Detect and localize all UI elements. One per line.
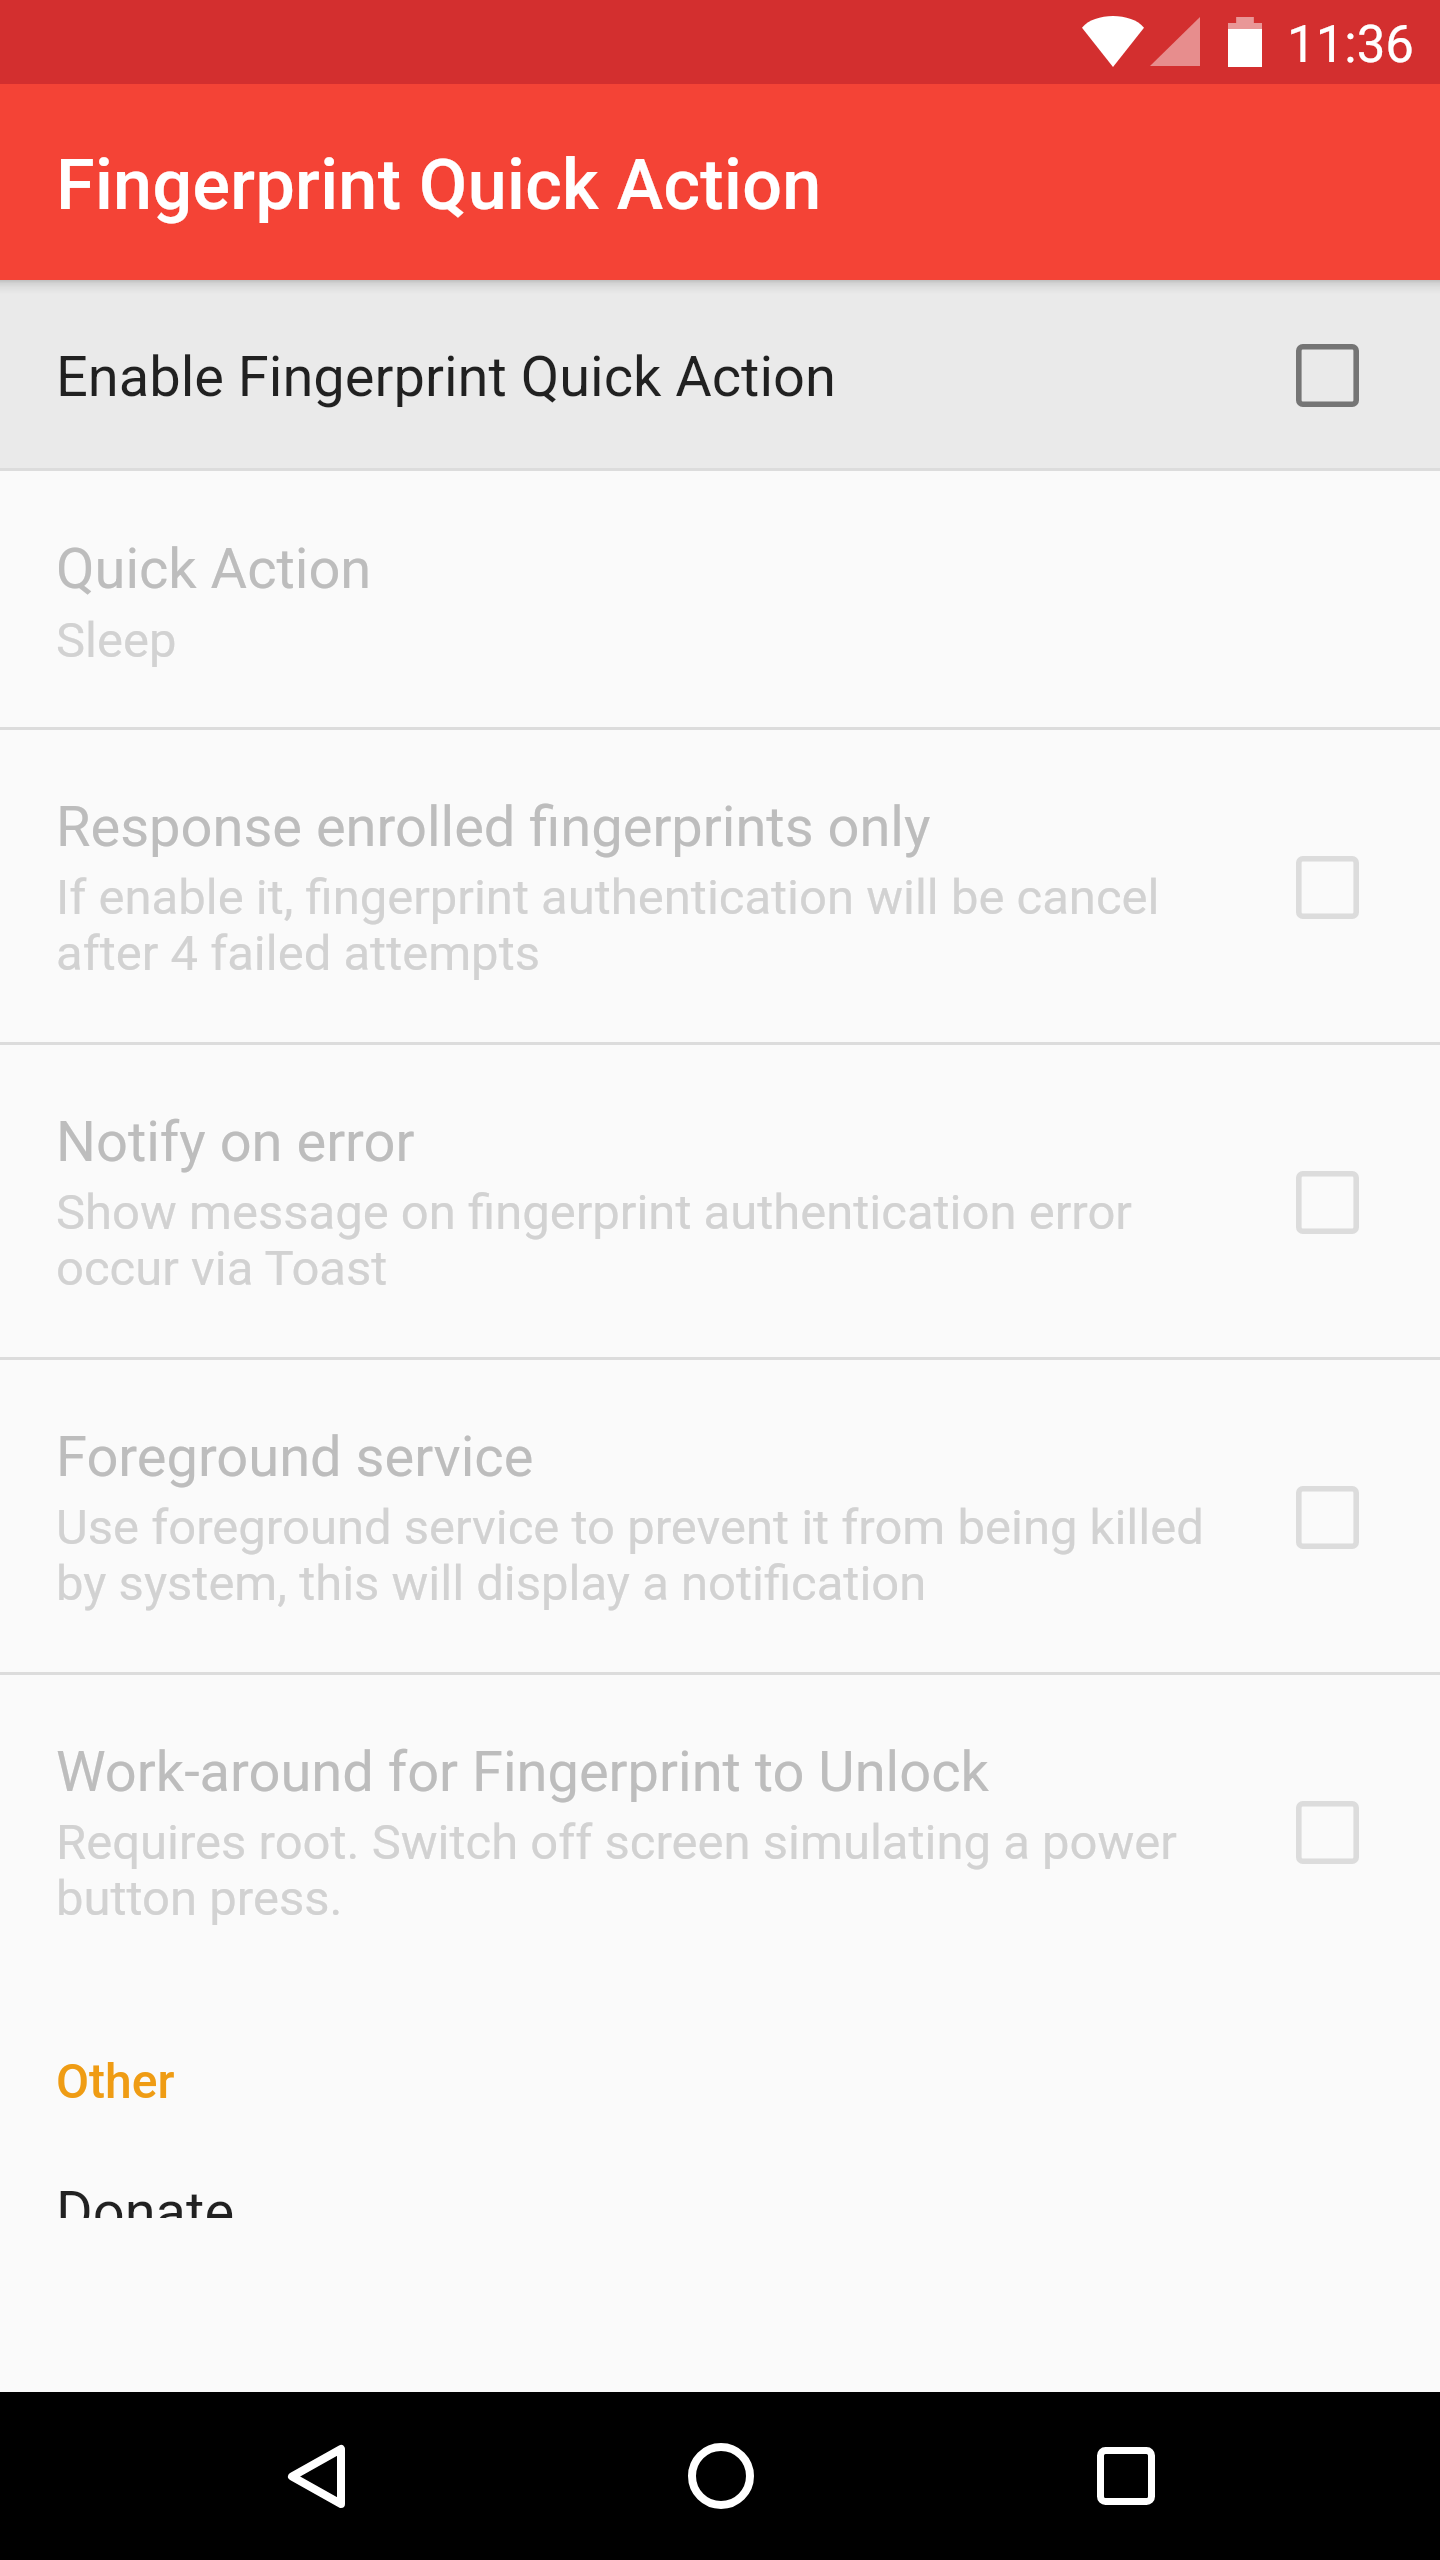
staticText: Enable Fingerprint Quick Action [56, 344, 836, 410]
staticText: Requires root. Switch off screen simulat… [56, 1815, 1226, 1927]
button[interactable]: Enable Fingerprint Quick Action [0, 280, 1440, 468]
button[interactable]: Donate [0, 2123, 1440, 2218]
button[interactable]: Work-around for Fingerprint to Unlock [0, 1675, 1440, 1987]
staticText: Other [56, 2053, 175, 2109]
button[interactable]: Recent apps [1061, 2411, 1191, 2541]
staticText: Notify on error [56, 1109, 415, 1175]
button[interactable]: Quick Action [0, 471, 1440, 727]
staticText: Show message on fingerprint authenticati… [56, 1185, 1226, 1297]
button[interactable]: Notify on error [0, 1045, 1440, 1357]
staticText: If enable it, fingerprint authentication… [56, 870, 1226, 982]
button[interactable]: Response enrolled fingerprints only [0, 730, 1440, 1042]
button[interactable]: Foreground service [0, 1360, 1440, 1672]
staticText: Work-around for Fingerprint to Unlock [56, 1739, 989, 1805]
staticText: Use foreground service to prevent it fro… [56, 1500, 1226, 1612]
staticText: Response enrolled fingerprints only [56, 794, 931, 860]
staticText: 11:36 [1287, 15, 1415, 75]
staticText: Foreground service [56, 1424, 534, 1490]
button[interactable]: Back [251, 2411, 381, 2541]
button[interactable]: Home [656, 2411, 786, 2541]
staticText: Quick Action [56, 536, 372, 602]
staticText: Fingerprint Quick Action [56, 144, 822, 226]
staticText: Donate [56, 2179, 235, 2218]
staticText: Sleep [56, 612, 177, 669]
